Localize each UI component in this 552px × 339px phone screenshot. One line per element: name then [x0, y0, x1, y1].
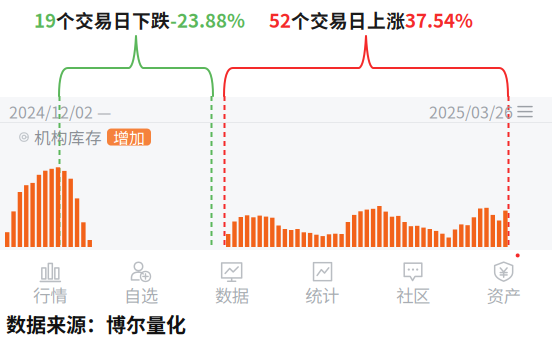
staticText: 统计 — [305, 282, 339, 308]
staticText: 2024/12/02 — — [9, 100, 111, 123]
staticText: 52 — [269, 6, 291, 33]
button[interactable]: 统计 — [277, 247, 368, 313]
staticText: 资产 — [487, 282, 521, 308]
staticText: 增加 — [113, 125, 145, 149]
staticText: 行情 — [33, 282, 67, 308]
staticText: 社区 — [396, 282, 430, 308]
staticText: 机构库存 — [34, 125, 102, 149]
button[interactable]: 数据 — [186, 247, 277, 313]
staticText: -23.88% — [170, 6, 245, 33]
button[interactable]: 资产 — [458, 247, 549, 313]
button[interactable]: 社区 — [368, 247, 458, 313]
staticText: 19 — [34, 6, 56, 33]
button[interactable]: 行情 — [5, 247, 96, 313]
staticText: 个交易日上涨 — [291, 6, 405, 33]
staticText: 2025/03/26 — [429, 100, 513, 123]
staticText: 数据来源：博尔量化 — [6, 309, 186, 338]
button[interactable]: 自选 — [96, 247, 186, 313]
button[interactable]: Menu — [513, 105, 532, 119]
staticText: 个交易日下跌 — [56, 6, 170, 33]
staticText: 数据 — [215, 282, 249, 308]
staticText: 自选 — [124, 282, 158, 308]
staticText: 37.54% — [405, 6, 473, 33]
